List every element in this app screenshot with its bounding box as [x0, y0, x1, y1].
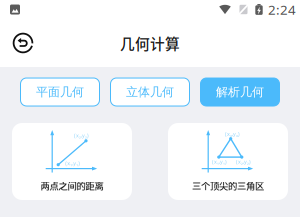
- button[interactable]: 解析几何: [200, 78, 279, 106]
- staticText: (x₂,y₂): [74, 132, 89, 139]
- staticText: 三个顶尖的三角区: [192, 179, 264, 192]
- staticText: 两点之间的距离: [40, 179, 103, 192]
- staticText: 立体几何: [126, 85, 174, 99]
- button[interactable]: Back: [6, 26, 40, 60]
- staticText: 2:24: [268, 1, 296, 18]
- staticText: 解析几何: [216, 85, 264, 99]
- staticText: 平面几何: [36, 85, 84, 99]
- staticText: (x₁,y₁): [212, 158, 227, 165]
- staticText: (x₂,y₂): [236, 158, 251, 165]
- button[interactable]: (x₃,y₃): [168, 123, 288, 200]
- button[interactable]: 平面几何: [20, 78, 99, 106]
- staticText: 几何计算: [120, 32, 180, 54]
- staticText: (x₁,y₁): [65, 160, 80, 167]
- staticText: (x₃,y₃): [225, 130, 240, 138]
- button[interactable]: 立体几何: [110, 78, 189, 106]
- button[interactable]: (x₂,y₂): [12, 123, 132, 200]
